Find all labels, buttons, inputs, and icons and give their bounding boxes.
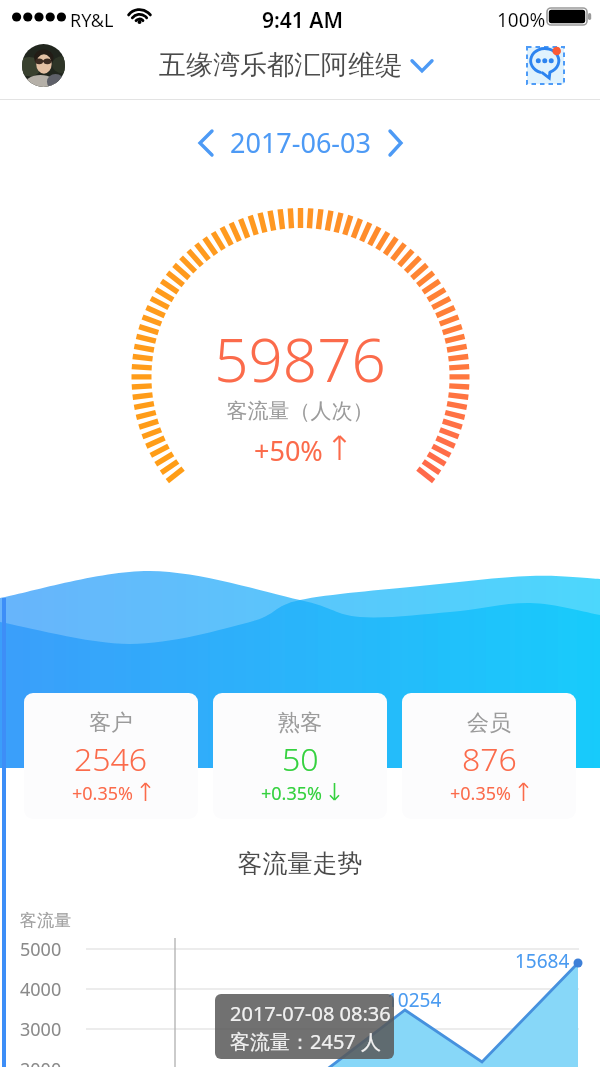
staticText: 2017-07-08 08:36 [230, 1000, 391, 1027]
staticText: 3000 [20, 1017, 62, 1042]
staticText: 熟客 [278, 709, 322, 737]
staticText: 五缘湾乐都汇阿维缇 [159, 48, 402, 82]
staticText: 10254 [387, 987, 442, 1013]
staticText: 50 [282, 737, 319, 781]
button[interactable]: 会员 [402, 693, 576, 819]
staticText: 客流量 [20, 910, 71, 931]
staticText: 客流量（人次） [0, 398, 600, 424]
staticText: RY&L [70, 8, 114, 33]
staticText: 100% [497, 7, 546, 33]
button[interactable]: 五缘湾乐都汇阿维缇 [159, 48, 434, 82]
staticText: 客流量走势 [0, 848, 600, 879]
staticText: 5000 [20, 937, 62, 962]
staticText: +50% [254, 432, 323, 469]
button[interactable]: 熟客 [213, 693, 387, 819]
button[interactable]: Messages [527, 47, 564, 84]
staticText: 客户 [89, 709, 133, 737]
staticText: 9:41 AM [262, 6, 343, 35]
staticText: 客流量：2457 人 [230, 1028, 381, 1055]
button[interactable]: 2017-06-03 [197, 124, 404, 161]
staticText: 2017-06-03 [230, 124, 371, 161]
staticText: 4000 [20, 977, 62, 1002]
staticText: 59876 [0, 318, 600, 400]
staticText: +0.35% [450, 781, 511, 806]
staticText: 876 [462, 737, 517, 781]
staticText: +0.35% [261, 781, 322, 806]
staticText: 会员 [467, 709, 511, 737]
staticText: +0.35% [72, 781, 133, 806]
button[interactable]: 客户 [24, 693, 198, 819]
staticText: 15684 [515, 948, 570, 974]
button[interactable]: Profile [22, 44, 65, 87]
staticText: 2000 [20, 1057, 62, 1067]
staticText: 2546 [74, 737, 148, 781]
